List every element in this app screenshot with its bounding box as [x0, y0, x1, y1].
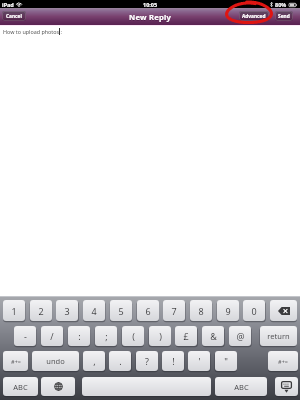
staticText: 3 — [64, 305, 70, 317]
staticText: & — [210, 330, 217, 342]
button[interactable]: #+= — [3, 351, 28, 371]
button[interactable]: Space — [82, 377, 211, 396]
button[interactable]: , — [83, 351, 105, 371]
staticText: 6 — [145, 305, 151, 317]
button[interactable]: 4 — [83, 300, 105, 321]
staticText: Cancel — [6, 13, 22, 20]
staticText: 9 — [225, 305, 231, 317]
staticText: ABC — [13, 382, 28, 392]
button[interactable]: 9 — [217, 300, 239, 321]
button[interactable]: ' — [188, 351, 210, 371]
staticText: . — [119, 355, 122, 367]
button[interactable]: 8 — [190, 300, 212, 321]
button[interactable]: 6 — [137, 300, 159, 321]
staticText: 80% — [275, 1, 287, 8]
staticText: return — [267, 331, 290, 341]
staticText: 7 — [171, 305, 177, 317]
button[interactable]: ; — [95, 326, 117, 346]
staticText: 5 — [118, 305, 124, 317]
button[interactable]: Hide keyboard — [275, 377, 298, 396]
button[interactable]: 1 — [3, 300, 25, 321]
staticText: , — [93, 355, 96, 367]
button[interactable]: Backspace — [270, 300, 297, 321]
button[interactable]: 0 — [243, 300, 265, 321]
staticText: : — [78, 330, 81, 342]
staticText: 10:05 — [143, 1, 158, 8]
staticText: New Reply — [129, 12, 172, 22]
staticText: 4 — [91, 305, 97, 317]
button[interactable]: " — [215, 351, 237, 371]
button[interactable]: / — [41, 326, 63, 346]
staticText: ) — [159, 330, 162, 342]
button[interactable]: Advanced — [239, 11, 269, 21]
staticText: How to upload photos : — [3, 28, 62, 35]
button[interactable]: ? — [136, 351, 158, 371]
staticText: undo — [46, 356, 65, 366]
staticText: ( — [132, 330, 135, 342]
staticText: #+= — [11, 358, 21, 365]
staticText: New Reply — [129, 13, 172, 23]
button[interactable]: Cancel — [2, 11, 26, 21]
button[interactable]: Change keyboard language — [41, 377, 75, 396]
staticText: £ — [183, 330, 189, 342]
staticText: iPad — [2, 1, 14, 8]
button[interactable]: £ — [175, 326, 197, 346]
button[interactable]: undo — [32, 351, 79, 371]
staticText: ? — [145, 355, 149, 367]
staticText: ; — [105, 330, 108, 342]
button[interactable]: 5 — [110, 300, 132, 321]
staticText: " — [224, 355, 228, 367]
button[interactable]: ! — [162, 351, 184, 371]
staticText: / — [50, 330, 54, 342]
staticText: ' — [198, 355, 201, 367]
button[interactable]: return — [260, 326, 297, 346]
button[interactable]: @ — [229, 326, 251, 346]
button[interactable]: 7 — [163, 300, 185, 321]
staticText: Advanced — [242, 13, 266, 20]
button[interactable]: #+= — [268, 351, 298, 371]
button[interactable]: ) — [149, 326, 171, 346]
staticText: ! — [172, 355, 175, 367]
staticText: Send — [278, 13, 290, 20]
button[interactable]: 2 — [30, 300, 52, 321]
button[interactable]: . — [109, 351, 131, 371]
button[interactable]: ABC — [3, 377, 38, 396]
button[interactable]: ( — [122, 326, 144, 346]
button[interactable]: : — [68, 326, 90, 346]
button[interactable]: Send — [275, 11, 293, 21]
button[interactable]: ABC — [215, 377, 267, 396]
staticText: 8 — [198, 305, 204, 317]
button[interactable]: 3 — [56, 300, 78, 321]
staticText: 0 — [251, 305, 257, 317]
button[interactable]: & — [202, 326, 224, 346]
button[interactable]: - — [14, 326, 36, 346]
staticText: @ — [236, 330, 245, 342]
staticText: - — [24, 330, 27, 342]
staticText: 2 — [38, 305, 44, 317]
staticText: #+= — [278, 358, 288, 365]
staticText: ABC — [234, 382, 249, 392]
staticText: 1 — [11, 305, 17, 317]
